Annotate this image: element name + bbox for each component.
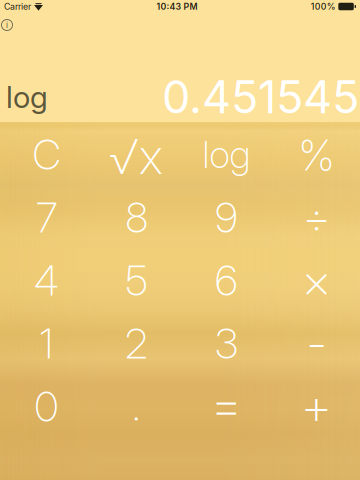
button[interactable]: About this calculator [0,17,15,33]
staticText: Carrier [4,1,31,12]
staticText: 100% [311,1,336,12]
button[interactable]: + [271,374,360,437]
button[interactable]: = [181,374,271,437]
button[interactable]: 3 [181,311,271,374]
button[interactable]: 8 [91,185,181,248]
staticText: 2 [125,318,148,368]
button[interactable]: 7 [1,185,91,248]
button[interactable]: . [91,374,181,437]
staticText: 10:43 PM [156,1,197,12]
button[interactable]: log [181,122,271,185]
staticText: ÷ [302,190,331,245]
staticText: = [209,373,243,436]
staticText: 3 [215,318,238,368]
staticText: 1 [39,318,53,368]
staticText: - [306,314,327,373]
button[interactable]: 6 [181,248,271,311]
button[interactable]: % [271,122,360,185]
button[interactable]: 9 [181,185,271,248]
staticText: 4 [34,255,59,305]
staticText: √x [109,127,163,186]
staticText: % [297,129,335,181]
button[interactable]: 2 [91,311,181,374]
staticText: 7 [36,192,57,242]
button[interactable]: 1 [1,311,91,374]
button[interactable]: ÷ [271,185,360,248]
button[interactable]: 0 [1,374,91,437]
button[interactable]: √x [91,122,181,185]
button[interactable]: 5 [91,248,181,311]
staticText: 0 [34,381,58,431]
staticText: 8 [125,192,147,242]
staticText: 6 [215,255,238,305]
button[interactable]: 4 [1,248,91,311]
staticText: C [32,129,60,179]
button[interactable]: C [1,122,91,185]
staticText: 9 [215,192,238,242]
staticText: log [6,79,48,115]
staticText: + [300,375,333,436]
staticText: 5 [125,255,147,305]
staticText: i [6,20,8,30]
staticText: × [301,251,332,310]
staticText: . [132,380,141,430]
staticText: log [202,132,250,177]
button[interactable]: - [271,311,360,374]
staticText: 0.451545 [162,70,359,124]
button[interactable]: × [271,248,360,311]
